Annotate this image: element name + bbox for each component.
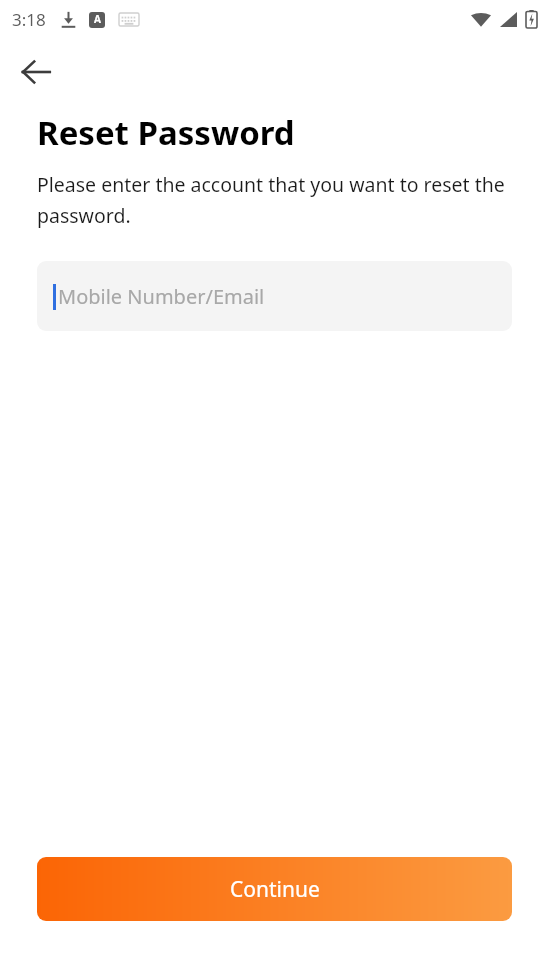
- staticText: A: [94, 12, 101, 26]
- staticText: 3:18: [12, 8, 46, 31]
- staticText: Please enter the account that you want t…: [37, 171, 512, 229]
- staticText: Continue: [230, 875, 320, 904]
- staticText: Mobile Number/Email: [58, 283, 265, 310]
- staticText: Reset Password: [37, 110, 295, 155]
- button[interactable]: Back: [10, 46, 62, 98]
- button[interactable]: Continue: [37, 857, 512, 921]
- button[interactable]: Mobile Number/Email: [37, 261, 512, 331]
